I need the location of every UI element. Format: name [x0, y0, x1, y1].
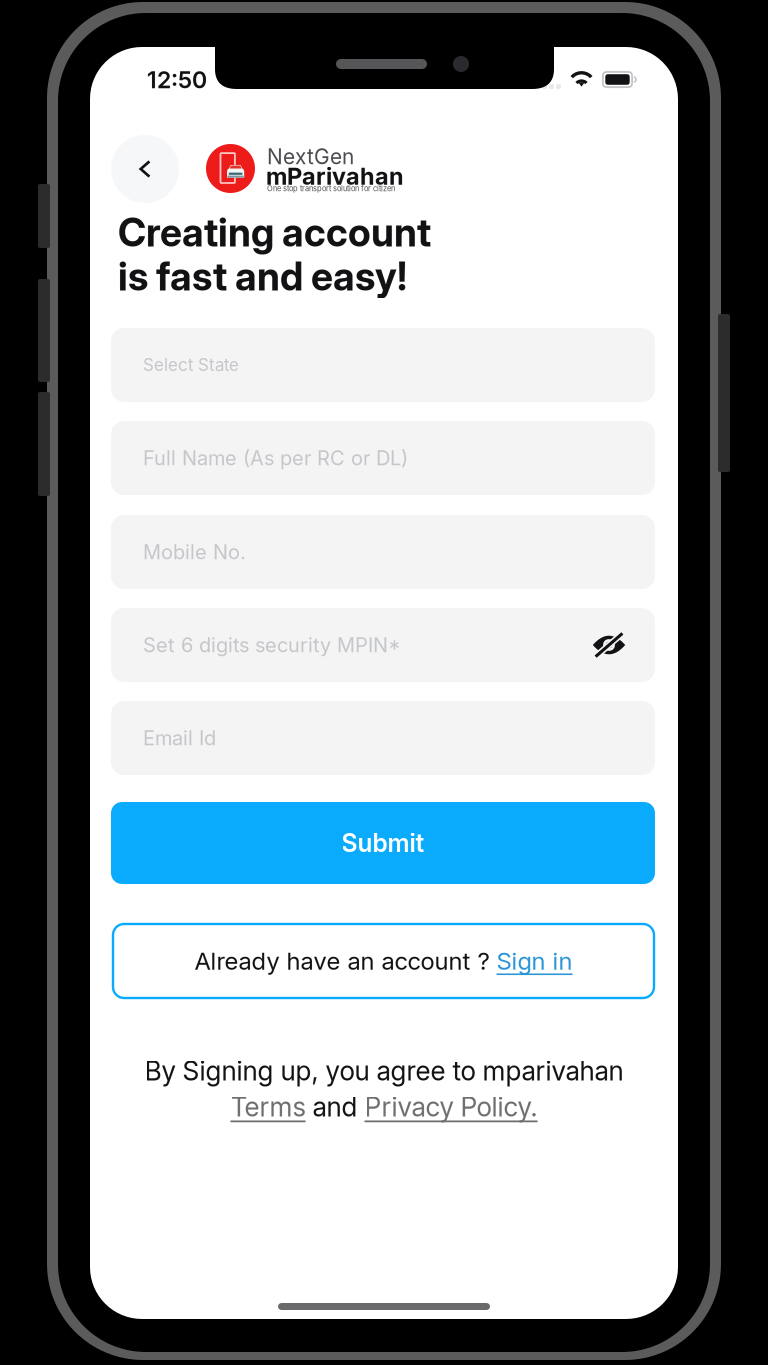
button[interactable]: Submit	[111, 802, 655, 884]
staticText: Privacy Policy.	[364, 1091, 537, 1123]
staticText: Email Id	[143, 726, 216, 750]
staticText: is fast and easy!	[118, 253, 407, 300]
staticText: mParivahan	[266, 162, 404, 191]
staticText: Mobile No.	[143, 540, 246, 564]
staticText: Terms	[230, 1091, 305, 1123]
staticText: Set 6 digits security MPIN*	[143, 633, 401, 657]
button[interactable]: Set 6 digits security MPIN*	[111, 608, 655, 682]
button[interactable]: Full Name (As per RC or DL)	[111, 421, 655, 495]
button[interactable]: Email Id	[111, 701, 655, 775]
button[interactable]: Mobile No.	[111, 515, 655, 589]
staticText: By Signing up, you agree to mparivahan	[144, 1055, 623, 1087]
staticText: 12:50	[147, 66, 207, 94]
button[interactable]: Back	[111, 135, 179, 203]
staticText: One stop transport solution for citizen	[267, 184, 395, 193]
staticText: Sign in	[496, 946, 572, 975]
staticText: NextGen	[267, 144, 354, 169]
button[interactable]: Select State	[111, 328, 655, 402]
button[interactable]: Privacy Policy.	[364, 1091, 537, 1123]
staticText: Creating account	[118, 209, 431, 256]
staticText: Select State	[143, 355, 239, 375]
staticText: Full Name (As per RC or DL)	[143, 446, 408, 470]
button[interactable]: Terms	[230, 1091, 305, 1123]
staticText: Submit	[341, 828, 424, 858]
button[interactable]: Already have an account ?	[113, 924, 654, 998]
staticText: and	[305, 1091, 364, 1123]
staticText: Already have an account ?	[194, 946, 496, 975]
